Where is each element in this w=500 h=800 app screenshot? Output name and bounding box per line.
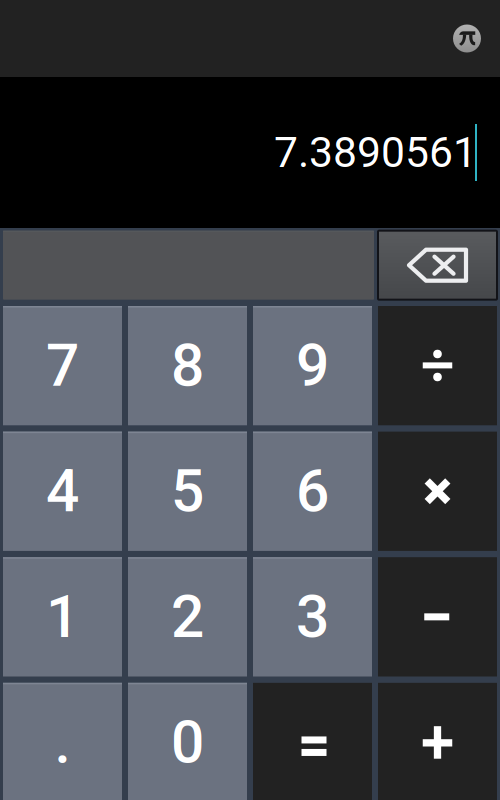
button[interactable]: 0 xyxy=(128,683,247,800)
staticText: 9 xyxy=(296,331,329,400)
staticText: . xyxy=(54,708,70,777)
staticText: 3 xyxy=(296,582,329,651)
button[interactable]: Plus xyxy=(378,683,497,800)
staticText: 4 xyxy=(46,457,79,526)
button[interactable]: Divide xyxy=(378,306,497,425)
button[interactable]: 4 xyxy=(3,432,122,551)
staticText: 6 xyxy=(296,457,329,526)
button[interactable]: 8 xyxy=(128,306,247,425)
button[interactable]: 1 xyxy=(3,557,122,676)
staticText: 7 xyxy=(46,331,79,400)
staticText: 7.3890561 xyxy=(274,127,477,177)
button[interactable]: Backspace xyxy=(378,231,497,300)
staticText: 8 xyxy=(171,331,204,400)
button[interactable]: 5 xyxy=(128,432,247,551)
button[interactable]: Multiply xyxy=(378,432,497,551)
button[interactable]: . xyxy=(3,683,122,800)
staticText: 0 xyxy=(171,708,204,777)
button[interactable]: 2 xyxy=(128,557,247,676)
button[interactable]: 6 xyxy=(253,432,372,551)
button[interactable]: Pi constant xyxy=(453,24,481,52)
button[interactable]: 7 xyxy=(3,306,122,425)
button[interactable]: 9 xyxy=(253,306,372,425)
staticText: 5 xyxy=(171,457,204,526)
button[interactable]: Equals xyxy=(253,683,372,800)
staticText: 1 xyxy=(46,582,79,651)
button[interactable]: Minus xyxy=(378,557,497,676)
button[interactable]: 3 xyxy=(253,557,372,676)
staticText: 2 xyxy=(171,582,204,651)
